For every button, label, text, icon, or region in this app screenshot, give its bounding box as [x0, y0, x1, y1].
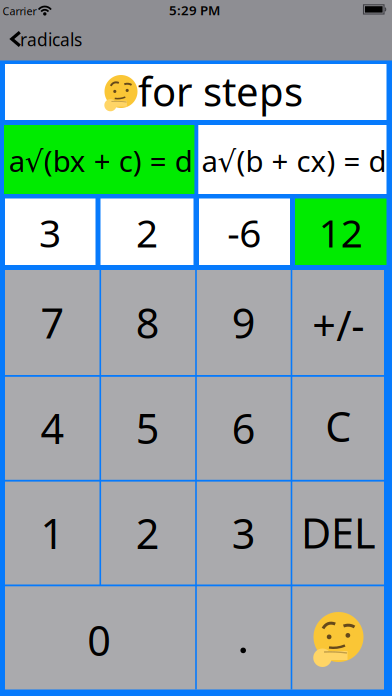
staticText: 5:29 PM [169, 1, 220, 19]
staticText: -6 [227, 207, 261, 258]
staticText: 8 [136, 295, 160, 350]
staticText: a√(b + cx) = d [201, 141, 386, 180]
staticText: radicals [20, 28, 82, 51]
staticText: 5 [136, 401, 160, 455]
staticText: 2 [136, 506, 160, 560]
staticText: a√(bx + c) = d [9, 141, 193, 180]
staticText: 7 [40, 295, 64, 350]
staticText: 12 [319, 207, 363, 258]
staticText: for steps [138, 64, 303, 117]
staticText: 1 [40, 506, 64, 560]
staticText: C [325, 399, 351, 453]
staticText: 2 [136, 207, 158, 258]
staticText: 3 [232, 506, 256, 560]
staticText: 4 [40, 401, 64, 455]
staticText: 6 [232, 401, 256, 455]
staticText: Carrier [2, 4, 36, 18]
staticText: 0 [87, 613, 111, 667]
staticText: +/- [312, 298, 364, 352]
staticText: DEL [301, 505, 376, 560]
staticText: 3 [39, 207, 61, 258]
staticText: 9 [232, 295, 256, 350]
